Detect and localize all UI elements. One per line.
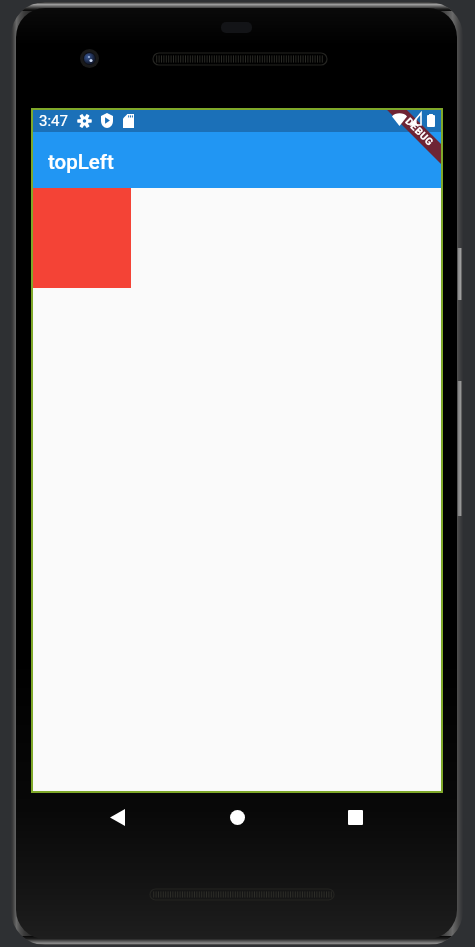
staticText: DEBUG bbox=[403, 116, 436, 149]
button[interactable]: Back bbox=[97, 797, 137, 837]
staticText: 3:47 bbox=[39, 112, 68, 130]
staticText: topLeft bbox=[48, 150, 114, 174]
button[interactable]: Home bbox=[217, 797, 257, 837]
button[interactable]: Recent apps bbox=[335, 797, 375, 837]
